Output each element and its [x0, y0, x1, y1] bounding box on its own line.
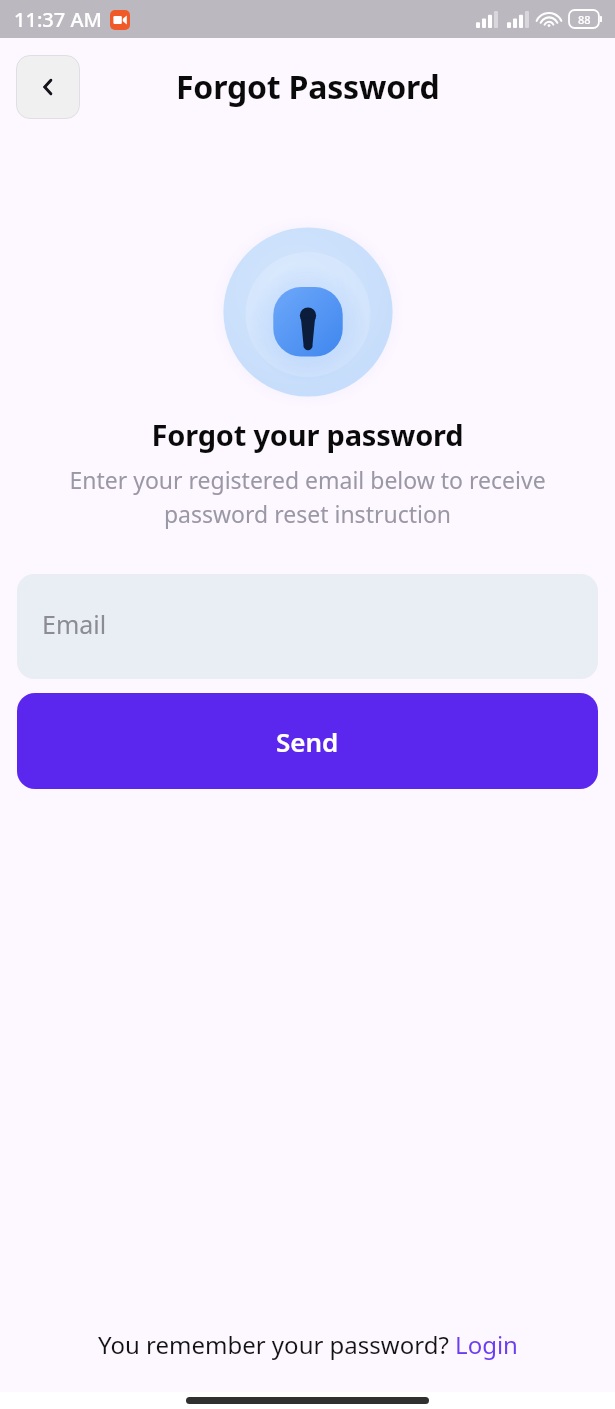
staticText: You remember your password? Login — [98, 1328, 518, 1361]
staticText: Forgot Password — [176, 65, 440, 109]
staticText: Email — [42, 607, 107, 641]
staticText: Enter your registered email below to rec… — [18, 464, 597, 529]
button[interactable]: Email — [17, 574, 598, 679]
button[interactable]: Send — [17, 693, 598, 789]
button[interactable]: You remember your password? Login — [0, 1312, 615, 1376]
button[interactable]: Back — [16, 55, 80, 119]
staticText: Forgot your password — [0, 415, 615, 454]
staticText: Send — [276, 724, 339, 759]
staticText: 88 — [578, 12, 591, 27]
staticText: 11:37 AM — [14, 6, 102, 33]
